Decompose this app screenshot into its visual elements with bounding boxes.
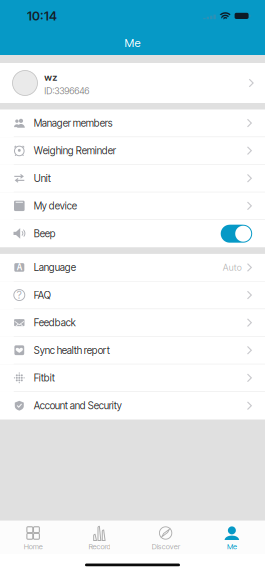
staticText: Account and Security bbox=[34, 400, 122, 412]
button[interactable]: Feedback bbox=[0, 309, 265, 337]
staticText: Me bbox=[124, 36, 140, 50]
staticText: wz bbox=[44, 71, 57, 83]
button[interactable]: Record bbox=[66, 520, 132, 554]
button[interactable]: Unit bbox=[0, 165, 265, 192]
button[interactable]: Manager members bbox=[0, 109, 265, 137]
staticText: A bbox=[17, 263, 22, 272]
button[interactable]: Account and Security bbox=[0, 392, 265, 419]
staticText: Sync health report bbox=[34, 344, 110, 356]
staticText: Discover bbox=[152, 542, 180, 551]
staticText: My device bbox=[34, 200, 77, 212]
button[interactable]: Beep bbox=[0, 220, 265, 247]
button[interactable]: Discover bbox=[132, 520, 199, 554]
button[interactable]: My device bbox=[0, 192, 265, 220]
staticText: Me bbox=[227, 542, 237, 551]
staticText: Record bbox=[88, 542, 110, 551]
button[interactable]: Home bbox=[0, 520, 66, 554]
staticText: Fitbit bbox=[34, 372, 55, 384]
staticText: ID:3396646 bbox=[44, 86, 89, 97]
button[interactable]: Sync health report bbox=[0, 337, 265, 364]
staticText: ? bbox=[17, 288, 22, 301]
button[interactable]: wz bbox=[0, 63, 265, 103]
staticText: Feedback bbox=[34, 317, 76, 329]
button[interactable]: A bbox=[0, 254, 265, 281]
staticText: Unit bbox=[34, 172, 51, 184]
staticText: Weighing Reminder bbox=[34, 145, 116, 157]
staticText: Auto bbox=[223, 262, 242, 273]
button[interactable]: Me bbox=[199, 520, 265, 554]
button[interactable]: Weighing Reminder bbox=[0, 137, 265, 165]
button[interactable]: Fitbit bbox=[0, 364, 265, 392]
staticText: 10:14 bbox=[27, 8, 57, 24]
staticText: Language bbox=[34, 261, 76, 273]
staticText: FAQ bbox=[34, 289, 51, 301]
staticText: Manager members bbox=[34, 117, 113, 129]
button[interactable]: ? bbox=[0, 281, 265, 309]
staticText: Beep bbox=[34, 228, 56, 240]
staticText: Home bbox=[24, 542, 43, 551]
